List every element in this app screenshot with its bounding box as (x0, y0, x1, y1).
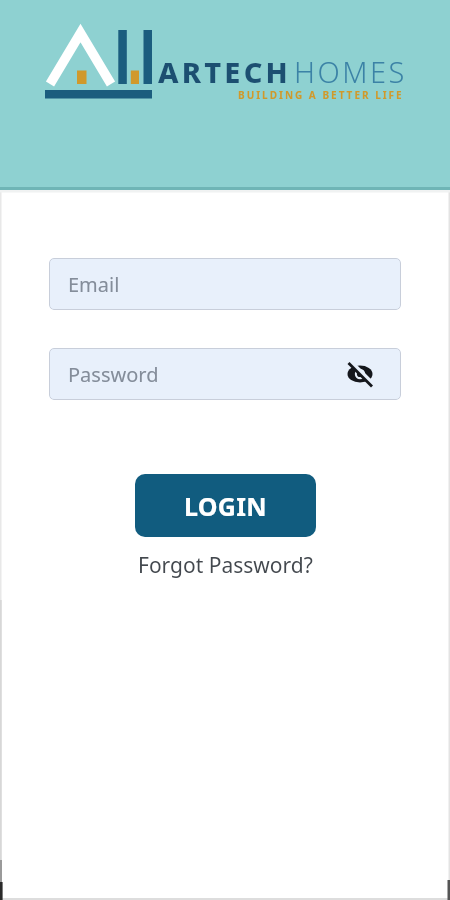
staticText: BUILDING A BETTER LIFE (238, 88, 404, 102)
staticText: Email (68, 271, 120, 298)
staticText: Forgot Password? (138, 551, 313, 580)
staticText: HOMES (294, 52, 407, 91)
button[interactable]: Email (49, 258, 401, 310)
button[interactable]: LOGIN (135, 474, 316, 537)
staticText: LOGIN (184, 489, 267, 523)
button[interactable]: Forgot Password? (0, 548, 450, 582)
button[interactable] (342, 356, 378, 392)
button[interactable]: Password (49, 348, 401, 400)
staticText: ARTECH (158, 52, 291, 91)
staticText: Password (68, 361, 159, 388)
